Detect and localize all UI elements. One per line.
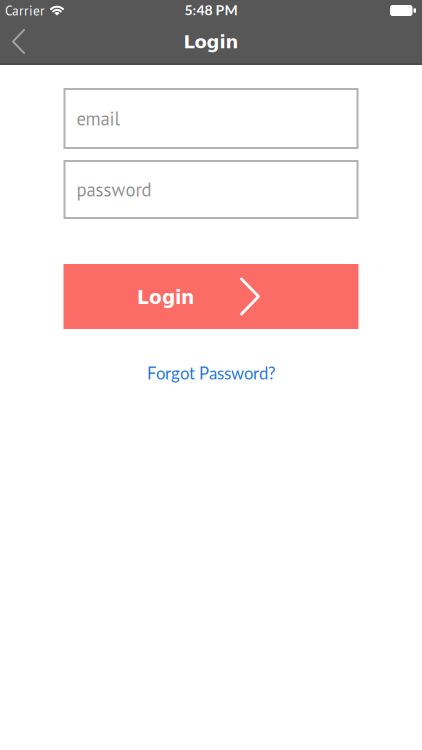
button[interactable]: Back [0,21,40,63]
staticText: password [76,177,151,202]
staticText: 5:48 PM [184,1,237,18]
staticText: Carrier [5,2,45,19]
button[interactable]: Login [63,264,358,329]
button[interactable]: Forgot Password? [147,363,275,383]
staticText: email [76,106,119,131]
staticText: Forgot Password? [147,363,275,383]
button[interactable]: password [63,160,358,219]
button[interactable]: email [63,88,358,149]
staticText: Login [183,31,238,52]
staticText: Login [137,287,194,308]
